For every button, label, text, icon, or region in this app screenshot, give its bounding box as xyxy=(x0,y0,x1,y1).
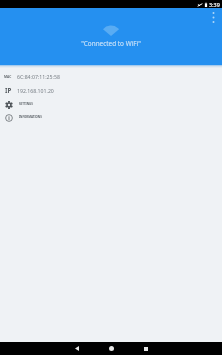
staticText: SETTINGS xyxy=(19,102,33,106)
button[interactable]: MAC xyxy=(0,70,222,83)
staticText: MAC xyxy=(4,75,12,79)
button[interactable]: Recent apps xyxy=(132,342,160,355)
button[interactable]: SETTINGS xyxy=(0,97,222,110)
staticText: 6C:84:07:11:25:58 xyxy=(17,73,60,80)
button[interactable]: More options xyxy=(204,8,222,27)
button[interactable]: Home xyxy=(97,342,125,355)
button[interactable]: Back xyxy=(63,342,91,355)
staticText: INFORMATIONS xyxy=(19,115,42,119)
staticText: 192.168.101.20 xyxy=(17,87,54,94)
button[interactable]: IP xyxy=(0,83,222,97)
button[interactable]: INFORMATIONS xyxy=(0,110,222,123)
staticText: 3:39 xyxy=(209,1,220,8)
staticText: IP xyxy=(5,86,12,94)
staticText: "Connected to WiFi" xyxy=(81,39,141,48)
